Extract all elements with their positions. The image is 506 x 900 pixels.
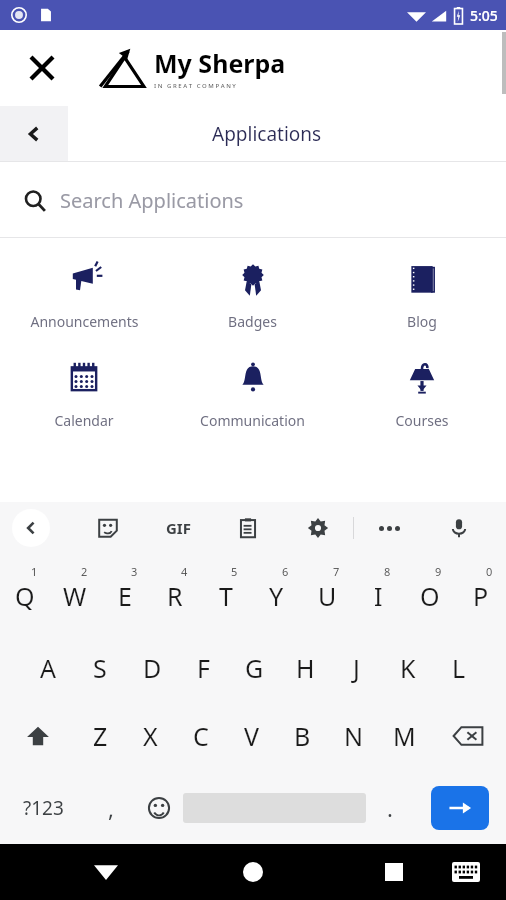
staticText: 8 <box>384 564 391 579</box>
staticText: Courses <box>395 411 449 430</box>
button[interactable]: More <box>354 506 424 550</box>
staticText: , <box>108 793 114 823</box>
button[interactable]: GIF <box>143 506 213 550</box>
staticText: G <box>245 651 264 685</box>
button[interactable]: Clipboard <box>213 506 283 550</box>
staticText: E <box>118 579 132 613</box>
button[interactable]: 0 <box>455 556 506 628</box>
button[interactable]: B <box>277 700 328 772</box>
button[interactable]: 8 <box>353 556 404 628</box>
button[interactable]: J <box>331 628 382 700</box>
staticText: Q <box>15 579 35 613</box>
staticText: T <box>219 579 233 613</box>
button[interactable]: N <box>328 700 379 772</box>
button[interactable]: Back <box>12 509 50 547</box>
staticText: 7 <box>333 564 340 579</box>
button[interactable]: 5 <box>200 556 251 628</box>
button[interactable]: Back <box>84 850 128 894</box>
button[interactable]: 9 <box>404 556 455 628</box>
button[interactable]: ?123 <box>0 772 87 844</box>
staticText: M <box>393 719 416 753</box>
button[interactable]: Announcements <box>0 252 168 335</box>
staticText: 4 <box>181 564 188 579</box>
button[interactable]: S <box>74 628 126 700</box>
staticText: Applications <box>212 121 322 147</box>
button[interactable]: Badges <box>168 252 337 335</box>
button[interactable]: . <box>366 772 414 844</box>
staticText: Badges <box>228 312 277 331</box>
staticText: J <box>353 651 360 685</box>
staticText: 2 <box>81 564 88 579</box>
button[interactable]: Space <box>183 772 366 844</box>
button[interactable]: Settings <box>283 506 353 550</box>
staticText: D <box>143 651 162 685</box>
staticText: . <box>387 793 393 823</box>
staticText: 1 <box>31 564 38 579</box>
button[interactable]: 4 <box>150 556 200 628</box>
button[interactable]: K <box>382 628 433 700</box>
staticText: I N G R E A T C O M P A N Y <box>154 82 236 90</box>
button[interactable]: Shift <box>0 700 75 772</box>
staticText: X <box>143 719 158 753</box>
button[interactable]: A <box>22 628 74 700</box>
button[interactable]: Voice input <box>424 506 494 550</box>
staticText: 0 <box>486 564 493 579</box>
button[interactable]: Sticker <box>72 506 143 550</box>
button[interactable]: L <box>433 628 484 700</box>
button[interactable]: 7 <box>302 556 353 628</box>
button[interactable]: Courses <box>337 351 506 434</box>
button[interactable]: G <box>229 628 280 700</box>
staticText: P <box>473 579 489 613</box>
button[interactable]: Communication <box>168 351 337 434</box>
staticText: Announcements <box>30 312 139 331</box>
button[interactable]: 3 <box>100 556 150 628</box>
button[interactable]: M <box>379 700 430 772</box>
staticText: C <box>193 719 209 753</box>
staticText: S <box>93 651 107 685</box>
staticText: ?123 <box>23 795 64 821</box>
staticText: Z <box>93 719 108 753</box>
staticText: H <box>296 651 315 685</box>
staticText: 5:05 <box>470 6 498 25</box>
button[interactable]: Calendar <box>0 351 168 434</box>
staticText: Y <box>269 579 284 613</box>
button[interactable]: Back <box>0 106 68 162</box>
button[interactable]: V <box>226 700 277 772</box>
button[interactable]: 6 <box>251 556 302 628</box>
button[interactable]: Backspace <box>430 700 506 772</box>
button[interactable]: Close <box>20 46 64 90</box>
button[interactable]: F <box>178 628 229 700</box>
staticText: My Sherpa <box>154 46 286 80</box>
staticText: U <box>318 579 337 613</box>
button[interactable]: Home <box>231 850 275 894</box>
button[interactable]: 1 <box>0 556 50 628</box>
button[interactable]: Enter <box>414 772 506 844</box>
staticText: I <box>374 579 383 613</box>
staticText: L <box>452 651 466 685</box>
staticText: 5 <box>231 564 238 579</box>
staticText: GIF <box>166 518 191 538</box>
button[interactable]: Blog <box>337 252 506 335</box>
staticText: F <box>197 651 210 685</box>
button[interactable]: H <box>280 628 331 700</box>
button[interactable]: C <box>175 700 226 772</box>
staticText: Calendar <box>54 411 114 430</box>
staticText: 6 <box>282 564 289 579</box>
staticText: V <box>244 719 260 753</box>
staticText: Blog <box>407 312 437 331</box>
button[interactable]: Z <box>75 700 125 772</box>
button[interactable]: , <box>87 772 135 844</box>
staticText: R <box>167 579 183 613</box>
staticText: N <box>344 719 364 753</box>
button[interactable]: Recents <box>372 850 416 894</box>
button[interactable]: 2 <box>50 556 100 628</box>
button[interactable]: Switch keyboard <box>444 850 488 894</box>
staticText: Communication <box>200 411 305 430</box>
staticText: 3 <box>131 564 138 579</box>
button[interactable]: D <box>126 628 178 700</box>
staticText: O <box>420 579 440 613</box>
button[interactable]: Emoji <box>135 772 183 844</box>
staticText: W <box>63 579 87 613</box>
button[interactable]: X <box>125 700 175 772</box>
staticText: 9 <box>435 564 442 579</box>
